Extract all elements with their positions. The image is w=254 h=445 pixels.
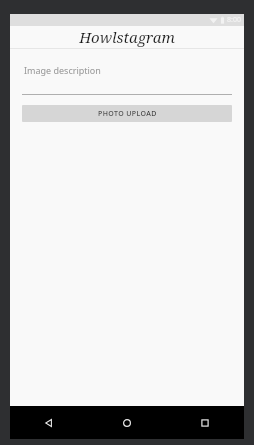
staticText: PHOTO UPLOAD — [98, 109, 157, 119]
staticText: 8:00 — [227, 15, 241, 25]
button[interactable]: PHOTO UPLOAD — [22, 105, 232, 122]
button[interactable]: Home — [88, 406, 166, 439]
button[interactable]: Back — [10, 406, 88, 439]
button[interactable]: Image description — [22, 64, 232, 95]
button[interactable]: Recent apps — [166, 406, 244, 439]
staticText: Image description — [24, 64, 101, 76]
staticText: Howlstagram — [79, 27, 175, 47]
